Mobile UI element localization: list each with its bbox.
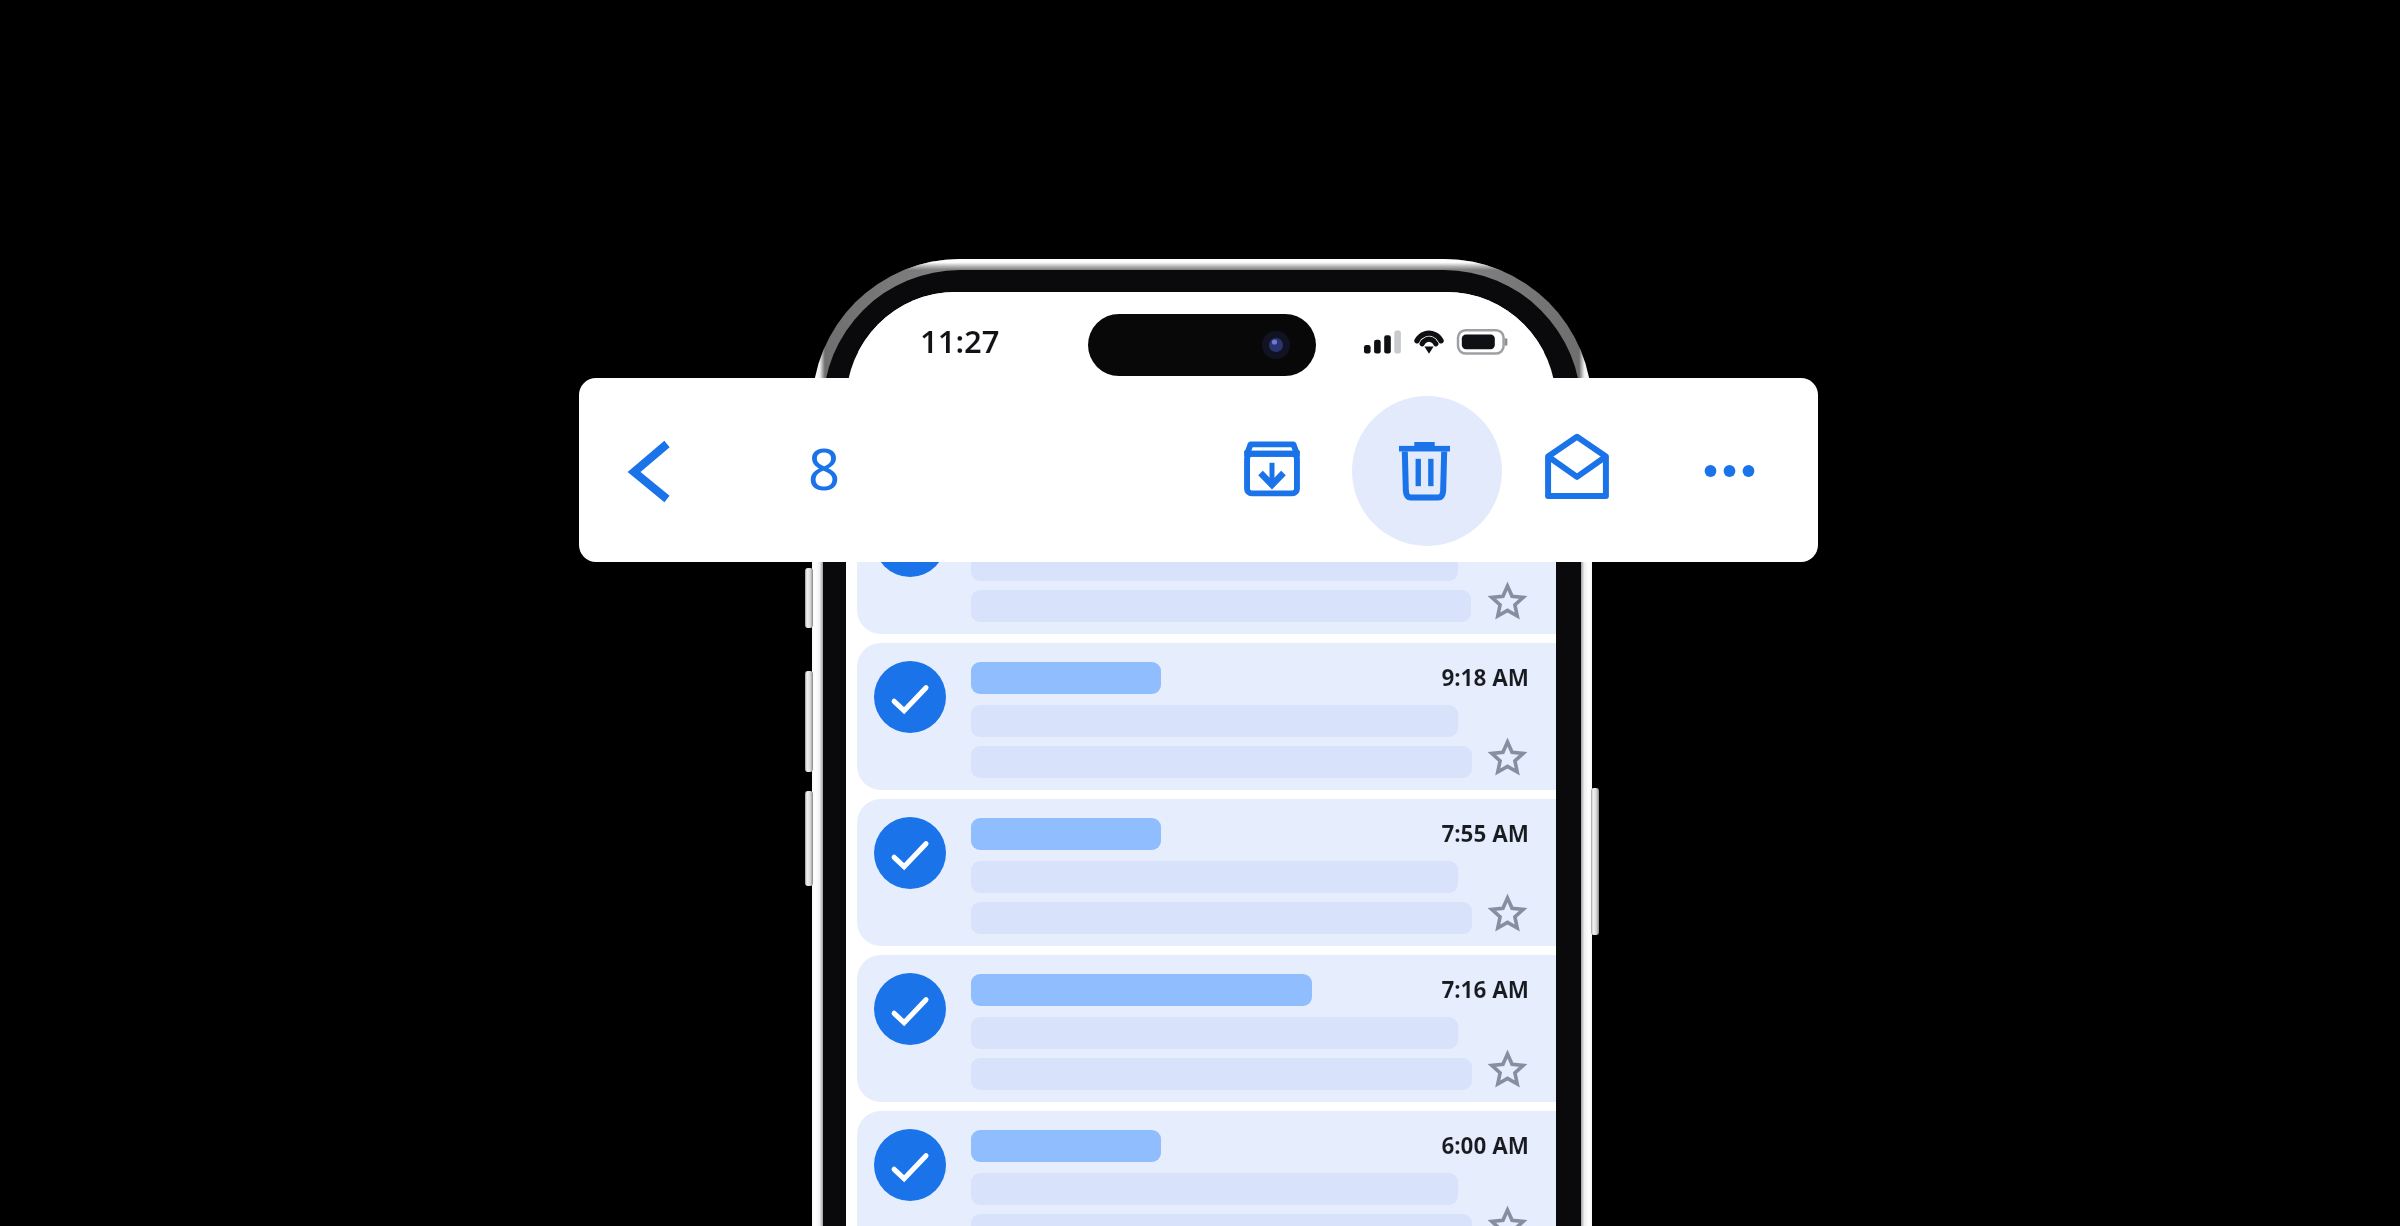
button[interactable]: Selected: [874, 817, 946, 889]
button[interactable]: Selected: [874, 1129, 946, 1201]
staticText: 7:55 AM: [1441, 818, 1529, 849]
button[interactable]: Selected: [874, 505, 946, 577]
button[interactable]: Archive: [1241, 438, 1303, 500]
staticText: 9:18 AM: [1441, 662, 1529, 693]
button[interactable]: Selected: [857, 487, 1556, 634]
staticText: 8: [808, 430, 841, 506]
button[interactable]: Star: [1486, 580, 1529, 623]
button[interactable]: 8: [794, 430, 854, 506]
button[interactable]: Selected: [857, 799, 1556, 946]
staticText: 11:27: [920, 320, 1000, 362]
button[interactable]: Selected: [874, 973, 946, 1045]
button[interactable]: More options: [1698, 449, 1761, 493]
button[interactable]: Selected: [857, 955, 1556, 1102]
staticText: 6:00 AM: [1441, 1130, 1529, 1161]
button[interactable]: Selected: [874, 661, 946, 733]
button[interactable]: Star: [1486, 1204, 1529, 1226]
button[interactable]: Star: [1486, 736, 1529, 779]
button[interactable]: Selected: [857, 1111, 1556, 1226]
button[interactable]: Back: [625, 434, 673, 508]
button[interactable]: Mark as unread: [1543, 433, 1611, 501]
button[interactable]: Delete: [1352, 396, 1502, 546]
staticText: 7:16 AM: [1441, 974, 1529, 1005]
button[interactable]: Selected: [857, 643, 1556, 790]
button[interactable]: Star: [1486, 892, 1529, 935]
button[interactable]: Star: [1486, 1048, 1529, 1091]
